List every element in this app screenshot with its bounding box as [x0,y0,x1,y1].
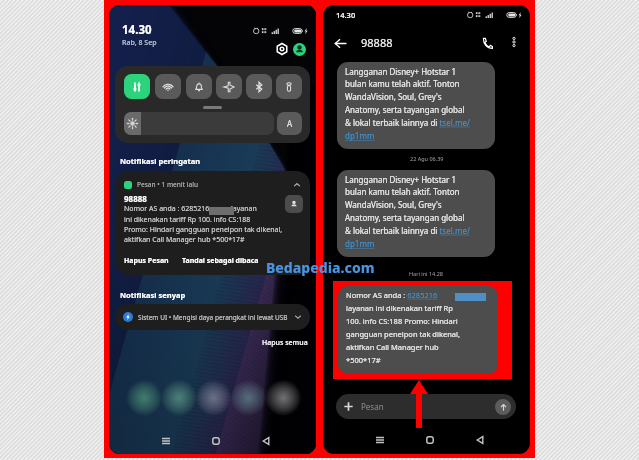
staticText: A [287,118,293,129]
staticText: 14.30 [336,10,356,20]
staticText: Bedapedia.com [266,258,375,277]
button[interactable]: Home [417,429,443,451]
button[interactable]: Settings [276,43,288,55]
staticText: Rab, 8 Sep [122,38,157,48]
button[interactable]: Home [203,430,229,452]
button[interactable]: Back [330,33,350,53]
button[interactable]: Quick setting [216,74,242,99]
button[interactable]: Back [467,429,493,451]
button[interactable]: More options [505,33,523,51]
staticText: Hari ini 14.28 [409,270,444,277]
button[interactable]: Hapus semua [262,338,308,348]
button[interactable]: A [277,112,302,135]
button[interactable]: Tandai sebagai dibaca [182,256,259,266]
staticText: Notifikasi senyap [120,290,186,300]
button[interactable]: Quick setting [186,74,212,99]
button[interactable]: Pesan • 1 menit lalu [115,171,310,275]
staticText: Nomor AS anda : 6285216 layanan ini dike… [346,290,460,365]
staticText: 22 Agu 06.39 [410,155,444,162]
staticText: Pesan [361,401,384,412]
button[interactable]: Quick setting [276,74,302,99]
button[interactable]: Pesan [336,394,516,419]
staticText: Langganan Disney+ Hotstar 1 bulan kamu t… [345,66,470,142]
button[interactable]: Back [253,430,279,452]
button[interactable]: Sistem UI • Mengisi daya perangkat ini l… [115,304,310,330]
staticText: 98888 [361,35,393,50]
staticText: Notifikasi peringatan [120,156,201,166]
button[interactable]: Send [495,399,511,415]
button[interactable]: Quick setting [124,74,150,99]
button[interactable]: Call [477,33,497,53]
button[interactable]: Brightness [124,112,274,135]
button[interactable]: Recents [367,429,393,451]
button[interactable]: Langganan Disney+ Hotstar 1 bulan kamu t… [337,62,495,149]
button[interactable]: Profile [293,43,306,56]
button[interactable]: Contact [285,195,303,213]
staticText: Langganan Disney+ Hotstar 1 bulan kamu t… [345,174,470,250]
button[interactable]: Quick setting [155,74,181,99]
button[interactable]: Langganan Disney+ Hotstar 1 bulan kamu t… [337,170,495,257]
staticText: Pesan • 1 menit lalu [137,180,199,189]
button[interactable]: Recents [153,430,179,452]
button[interactable]: Nomor AS anda : 6285216 layanan ini dike… [338,286,498,374]
button[interactable]: Hapus Pesan [124,256,169,266]
staticText: Nomor AS anda : 6285216 layanan ini dike… [124,204,283,244]
staticText: Sistem UI • Mengisi daya perangkat ini l… [138,313,288,322]
staticText: 14.30 [122,22,152,38]
staticText: 98888 [124,193,147,204]
button[interactable]: Quick setting [246,74,272,99]
